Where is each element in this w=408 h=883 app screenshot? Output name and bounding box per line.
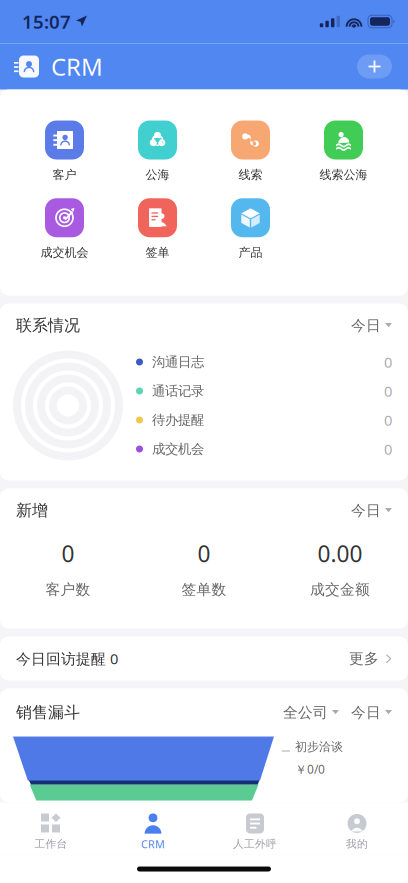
button[interactable]: 我的	[306, 802, 408, 854]
button[interactable]: Add	[357, 54, 392, 78]
button[interactable]: 人工外呼	[204, 802, 306, 854]
button[interactable]: 成交机会	[18, 198, 111, 260]
staticText: 0	[197, 538, 210, 569]
staticText: 待办提醒	[152, 412, 204, 428]
staticText: 新增	[16, 501, 48, 520]
button[interactable]: 公海	[111, 120, 204, 182]
staticText: 人工外呼	[233, 837, 277, 850]
button[interactable]: 客户	[18, 120, 111, 182]
button[interactable]: 工作台	[0, 802, 102, 854]
staticText: 0	[384, 439, 392, 459]
staticText: 0	[384, 352, 392, 372]
staticText: 联系情况	[16, 316, 80, 335]
staticText: 更多	[349, 649, 379, 667]
staticText: ￥0/0	[295, 761, 325, 777]
button[interactable]: CRM	[102, 802, 204, 854]
staticText: 工作台	[34, 837, 67, 850]
staticText: 线索	[238, 167, 262, 182]
staticText: 通话记录	[152, 383, 204, 399]
staticText: 成交机会	[40, 245, 88, 260]
staticText: 0	[61, 538, 74, 569]
button[interactable]: 线索	[204, 120, 297, 182]
staticText: 成交金额	[310, 581, 370, 599]
button[interactable]: 签单	[111, 198, 204, 260]
staticText: 客户	[52, 167, 76, 182]
staticText: 0	[384, 381, 392, 401]
button[interactable]: 产品	[204, 198, 297, 260]
staticText: 公海	[145, 167, 169, 182]
button[interactable]: 今日回访提醒 0	[0, 636, 408, 680]
staticText: 成交机会	[152, 441, 204, 457]
staticText: CRM	[51, 51, 103, 82]
staticText: 沟通日志	[152, 354, 204, 370]
staticText: 产品	[238, 245, 262, 260]
staticText: 全公司	[283, 703, 328, 721]
staticText: 今日	[351, 703, 381, 721]
staticText: CRM	[141, 837, 165, 851]
staticText: 签单数	[181, 581, 226, 599]
staticText: 今日	[351, 501, 381, 519]
staticText: 我的	[346, 837, 368, 850]
staticText: 15:07	[22, 9, 71, 34]
staticText: 初步洽谈	[295, 739, 343, 754]
staticText: 客户数	[45, 581, 90, 599]
button[interactable]: 线索公海	[297, 120, 390, 182]
staticText: 今日回访提醒 0	[16, 649, 118, 668]
staticText: 0	[384, 410, 392, 430]
staticText: 销售漏斗	[16, 703, 80, 722]
staticText: 线索公海	[319, 167, 367, 182]
staticText: 0.00	[317, 538, 362, 569]
staticText: 签单	[145, 245, 169, 260]
staticText: 今日	[351, 316, 381, 334]
